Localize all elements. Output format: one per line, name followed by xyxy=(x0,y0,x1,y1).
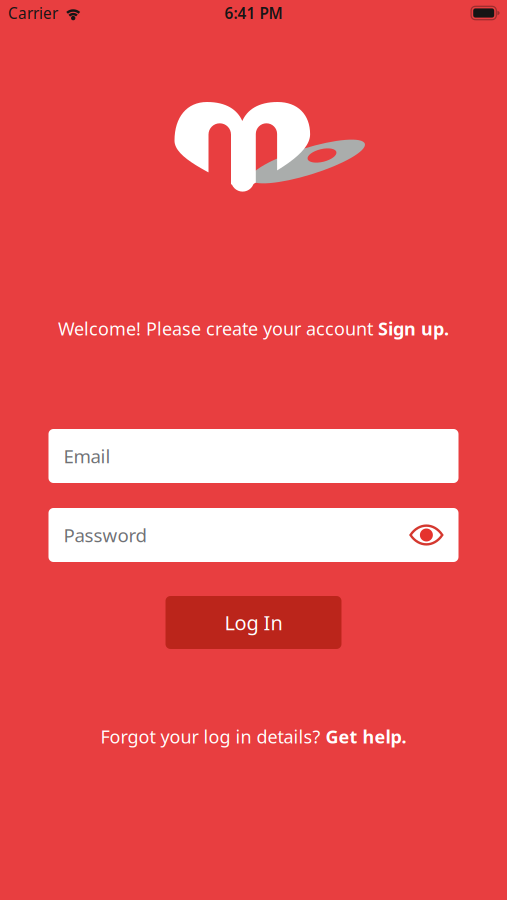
staticText: Password xyxy=(63,522,146,548)
staticText: Forgot your log in details? Get help. xyxy=(100,724,406,748)
staticText: Welcome! Please create your account Sign… xyxy=(58,316,449,340)
button[interactable]: Forgot your log in details? Get help. xyxy=(100,726,406,747)
staticText: Carrier xyxy=(8,3,58,23)
button[interactable]: Log In xyxy=(165,596,341,649)
staticText: Log In xyxy=(224,609,282,636)
staticText: 6:41 PM xyxy=(224,3,282,23)
staticText: Email xyxy=(63,443,110,469)
